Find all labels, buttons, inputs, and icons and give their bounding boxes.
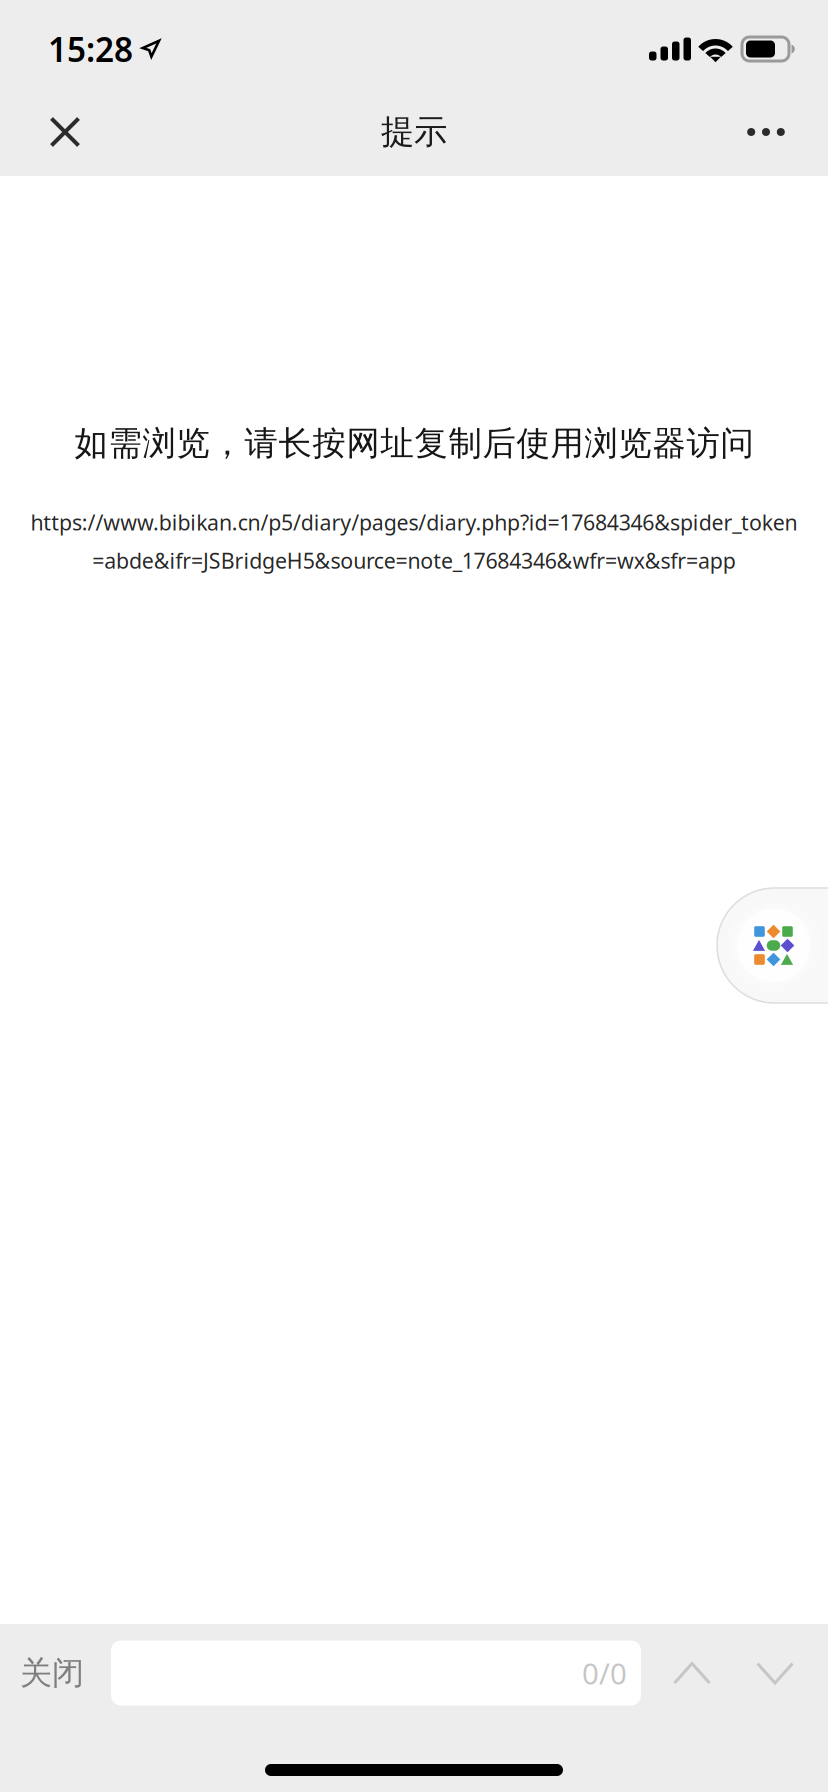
button[interactable]: More options: [722, 88, 810, 176]
staticText: https://www.bibikan.cn/p5/diary/pages/di…: [30, 508, 798, 536]
button[interactable]: Next result: [747, 1632, 803, 1714]
staticText: 15:28: [48, 27, 133, 71]
button[interactable]: Previous result: [664, 1632, 720, 1714]
staticText: 提示: [381, 111, 447, 152]
button[interactable]: 关闭: [18, 1632, 111, 1714]
button[interactable]: Mini program menu: [717, 888, 828, 1003]
staticText: =abde&ifr=JSBridgeH5&source=note_1768434…: [92, 546, 736, 575]
staticText: 如需浏览，请长按网址复制后使用浏览器访问: [74, 423, 753, 464]
button[interactable]: Close: [21, 88, 109, 176]
staticText: 关闭: [20, 1653, 84, 1693]
staticText: 0/0: [582, 1653, 627, 1692]
